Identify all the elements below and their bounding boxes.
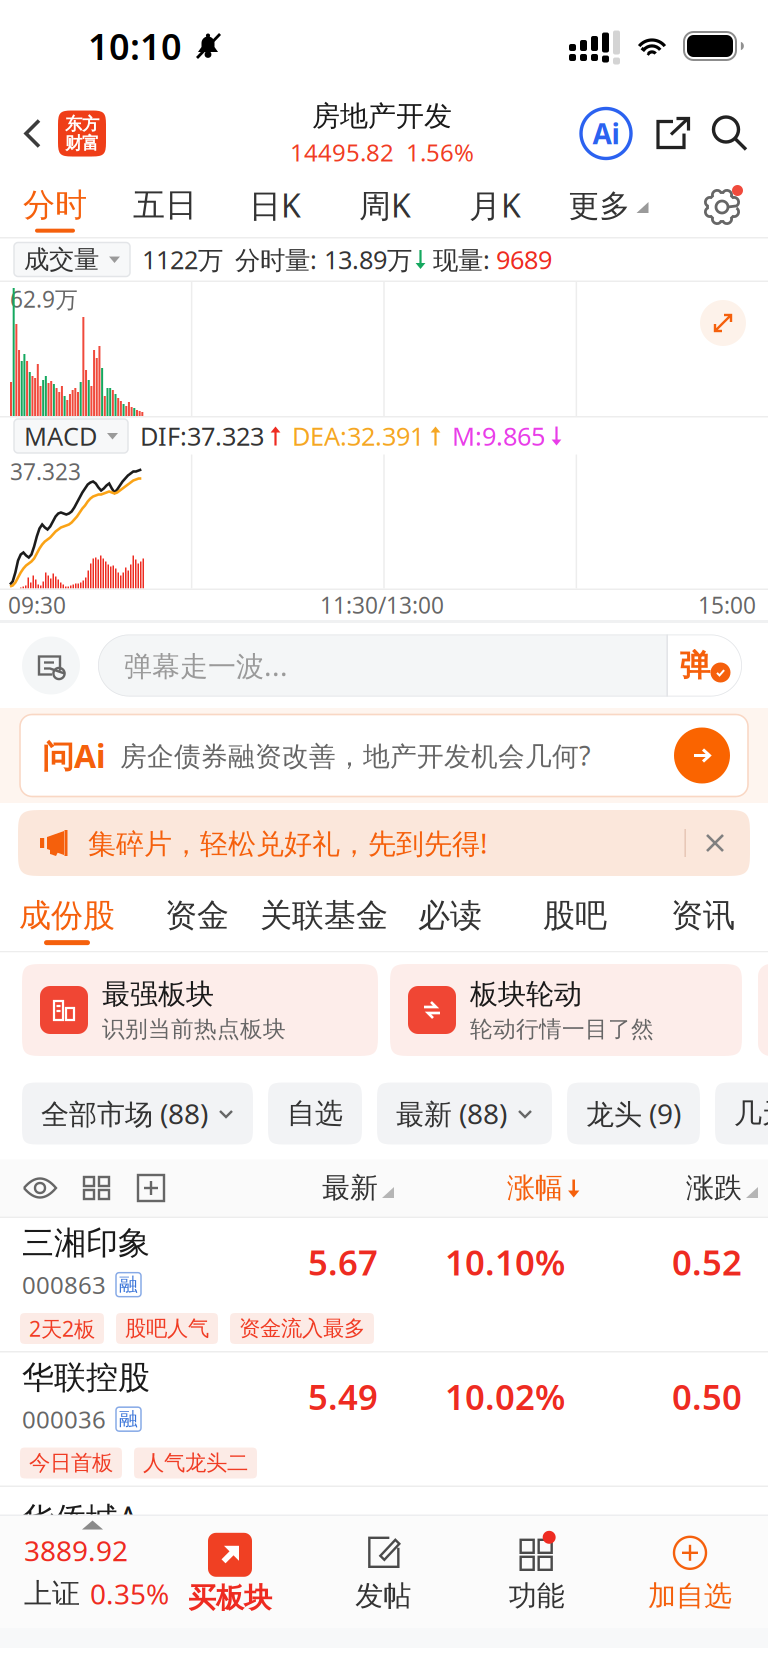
staticText: 轮动行情一目了然 — [470, 1015, 654, 1043]
staticText: 识别当前热点板块 — [102, 1015, 286, 1043]
staticText: 融 — [119, 1273, 138, 1296]
staticText: 0.52 — [672, 1239, 742, 1285]
button[interactable]: 东方财富 — [58, 110, 106, 156]
button[interactable]: 华联控股 — [0, 1352, 768, 1485]
staticText: Ai — [592, 115, 619, 152]
button[interactable]: 成交量 — [0, 242, 130, 276]
staticText: 1.56% — [406, 136, 474, 168]
button[interactable]: 成份股 — [0, 883, 134, 951]
staticText: 分时量: 13.89万 — [235, 243, 412, 276]
staticText: 5.67 — [308, 1239, 378, 1285]
button[interactable]: 发帖 — [323, 1518, 443, 1626]
button[interactable]: 返回 — [0, 92, 58, 175]
button[interactable]: 买板块 — [170, 1518, 290, 1626]
staticText: M:9.865 — [452, 419, 545, 453]
button[interactable]: 资金 — [134, 883, 260, 951]
button[interactable]: 关联基金 — [260, 883, 388, 951]
staticText: 37.323 — [10, 456, 81, 487]
button[interactable]: 最新 — [210, 1159, 396, 1216]
staticText: 人气龙头二 — [143, 1450, 248, 1476]
button[interactable]: 分时 — [0, 175, 110, 237]
staticText: 财富 — [65, 132, 99, 154]
button[interactable]: 月K — [440, 175, 550, 237]
staticText: 今日首板 — [29, 1450, 113, 1476]
button[interactable]: 股吧 — [512, 883, 638, 951]
staticText: 现量: — [433, 243, 490, 276]
button[interactable]: 全部市场 (88) — [22, 1082, 253, 1144]
button[interactable]: 加自选 — [630, 1518, 750, 1626]
staticText: 房企债券融资改善，地产开发机会几何? — [120, 738, 591, 773]
staticText: 62.9万 — [10, 284, 78, 314]
button[interactable]: 必读 — [388, 883, 512, 951]
staticText: MACD — [24, 419, 97, 453]
staticText: 14495.82 — [290, 136, 394, 168]
staticText: 买板块 — [188, 1581, 272, 1615]
button[interactable]: 分享 — [638, 92, 694, 175]
staticText: 更多 — [568, 187, 630, 225]
staticText: 问Ai — [42, 734, 106, 777]
staticText: 成交量 — [24, 244, 99, 275]
staticText: DIF:37.323 — [140, 419, 264, 453]
button[interactable]: 关闭 — [686, 828, 750, 858]
button[interactable]: 设置 — [696, 182, 768, 230]
staticText: 最强板块 — [102, 977, 214, 1011]
staticText: 3889.92 — [24, 1532, 128, 1569]
staticText: 分时 — [23, 185, 87, 225]
button[interactable]: 全屏 — [700, 300, 768, 346]
button[interactable]: 龙头 (9) — [567, 1082, 700, 1144]
staticText: 0.35% — [90, 1575, 169, 1612]
staticText: 华侨城A — [22, 1497, 138, 1539]
button[interactable]: 涨跌 — [583, 1159, 760, 1216]
button[interactable]: 日K — [220, 175, 330, 237]
button[interactable]: 视图 — [58, 1159, 112, 1216]
staticText: 房地产开发 — [312, 99, 452, 133]
staticText: 资金流入最多 — [239, 1315, 365, 1342]
staticText: 全部市场 (88) — [41, 1095, 208, 1132]
button[interactable]: 功能 — [477, 1518, 597, 1626]
staticText: 9689 — [496, 243, 552, 276]
staticText: 成份股 — [19, 896, 115, 935]
button[interactable]: 板块轮动 — [390, 964, 742, 1056]
button[interactable]: AI 助手 — [574, 101, 638, 165]
staticText: 最新 (88) — [396, 1095, 507, 1132]
button[interactable]: 五日 — [110, 175, 220, 237]
staticText: 五日 — [133, 185, 197, 225]
staticText: 股吧人气 — [125, 1315, 209, 1342]
staticText: 弹 — [679, 647, 710, 684]
staticText: 涨幅 — [507, 1171, 563, 1205]
button[interactable]: 涨幅 — [396, 1159, 583, 1216]
staticText: 东方 — [65, 113, 99, 134]
staticText: 弹幕走一波... — [124, 647, 288, 684]
staticText: 周K — [359, 184, 411, 226]
staticText: 三湘印象 — [22, 1223, 150, 1263]
staticText: 功能 — [509, 1579, 565, 1613]
staticText: 几天几板 — [734, 1096, 768, 1131]
button[interactable]: MACD — [0, 419, 128, 453]
staticText: 11:30/13:00 — [320, 590, 444, 620]
button[interactable]: 周K — [330, 175, 440, 237]
staticText: 10.02% — [445, 1373, 565, 1419]
button[interactable]: 资讯 — [638, 883, 768, 951]
button[interactable]: 隐藏 — [0, 1159, 58, 1216]
button[interactable]: 更多 — [550, 175, 668, 237]
staticText: 华联控股 — [22, 1358, 150, 1397]
button[interactable]: 三湘印象 — [0, 1218, 768, 1351]
staticText: 15:00 — [698, 590, 756, 620]
staticText: 日K — [249, 184, 301, 226]
staticText: 0.50 — [672, 1373, 742, 1419]
button[interactable]: 问Ai — [0, 708, 768, 803]
button[interactable]: 搜索 — [694, 92, 768, 175]
button[interactable]: 弹幕设置 — [0, 636, 80, 694]
button[interactable]: 添加 — [112, 1159, 166, 1216]
button[interactable]: 自选 — [268, 1082, 362, 1144]
staticText: 板块轮动 — [470, 977, 582, 1011]
staticText: 发帖 — [355, 1579, 411, 1613]
button[interactable]: 最新 (88) — [377, 1082, 552, 1144]
button[interactable]: 最强板块 — [22, 964, 378, 1056]
button[interactable]: 几天几板 — [715, 1082, 768, 1144]
staticText: 涨跌 — [686, 1171, 742, 1205]
staticText: 09:30 — [8, 590, 66, 620]
staticText: 000036 — [22, 1403, 106, 1435]
staticText: 资金 — [165, 896, 229, 935]
staticText: 2天2板 — [29, 1314, 95, 1343]
